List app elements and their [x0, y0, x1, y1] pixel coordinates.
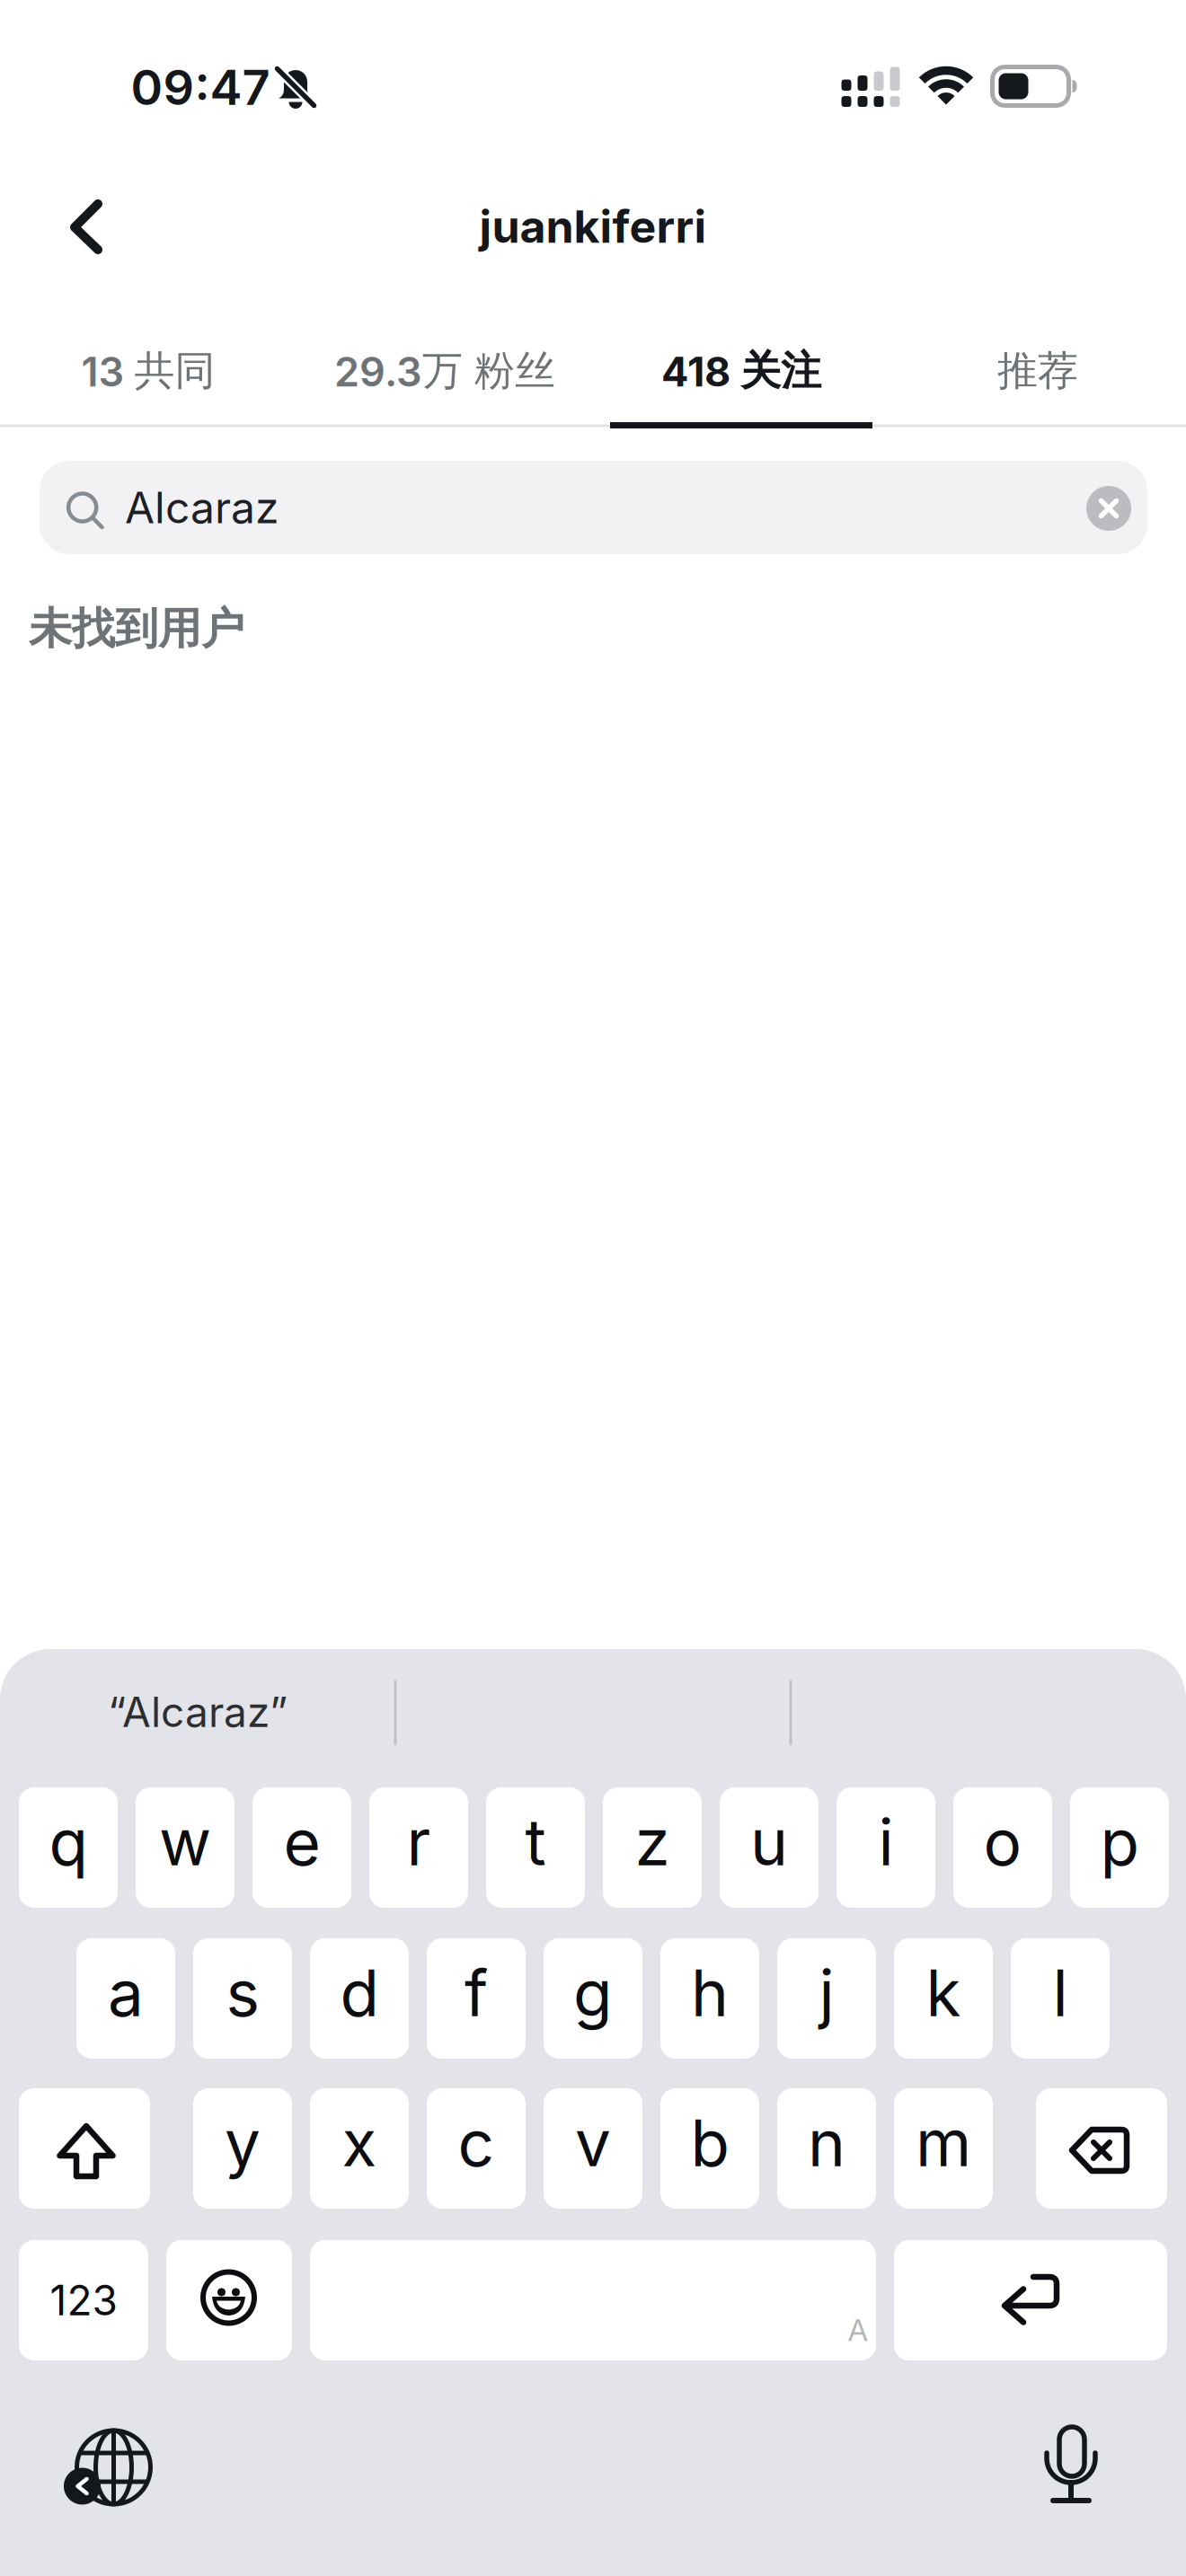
staticText: c: [458, 2104, 495, 2182]
button[interactable]: Clear search text: [1086, 486, 1131, 531]
staticText: A: [848, 2311, 868, 2348]
staticText: a: [108, 1954, 144, 2032]
button[interactable]: Search: [40, 461, 1147, 554]
button[interactable]: u: [720, 1787, 819, 1908]
staticText: y: [225, 2104, 261, 2182]
staticText: 未找到用户: [29, 602, 244, 656]
staticText: b: [690, 2104, 729, 2182]
button[interactable]: i: [836, 1787, 935, 1908]
button[interactable]: h: [660, 1938, 759, 2059]
staticText: e: [283, 1804, 320, 1881]
button[interactable]: v: [544, 2088, 642, 2209]
button[interactable]: Back: [46, 186, 127, 267]
button[interactable]: g: [544, 1938, 642, 2059]
button[interactable]: j: [777, 1938, 876, 2059]
button[interactable]: s: [193, 1938, 292, 2059]
button[interactable]: 418 关注: [593, 326, 889, 416]
button[interactable]: w: [136, 1787, 235, 1908]
button[interactable]: f: [427, 1938, 526, 2059]
button[interactable]: o: [953, 1787, 1052, 1908]
button[interactable]: b: [660, 2088, 759, 2209]
staticText: z: [635, 1804, 670, 1881]
button[interactable]: x: [310, 2088, 409, 2209]
staticText: 418 关注: [661, 346, 821, 396]
button[interactable]: Delete: [1036, 2088, 1167, 2209]
staticText: l: [1053, 1954, 1068, 2032]
button[interactable]: Space: [310, 2240, 876, 2360]
staticText: 123: [50, 2275, 117, 2325]
button[interactable]: 推荐: [889, 326, 1186, 416]
staticText: k: [926, 1954, 961, 2032]
staticText: u: [750, 1804, 788, 1881]
button[interactable]: k: [894, 1938, 993, 2059]
button[interactable]: m: [894, 2088, 993, 2209]
staticText: i: [878, 1804, 894, 1881]
button[interactable]: y: [193, 2088, 292, 2209]
button[interactable]: c: [427, 2088, 526, 2209]
button[interactable]: r: [369, 1787, 468, 1908]
staticText: s: [226, 1954, 259, 2032]
staticText: 09:47: [131, 58, 270, 116]
staticText: m: [916, 2104, 971, 2182]
staticText: p: [1100, 1804, 1139, 1881]
staticText: x: [342, 2104, 377, 2182]
staticText: d: [340, 1954, 379, 2032]
staticText: t: [525, 1804, 546, 1881]
button[interactable]: q: [19, 1787, 118, 1908]
staticText: r: [407, 1804, 431, 1881]
button[interactable]: a: [76, 1938, 175, 2059]
staticText: g: [573, 1954, 613, 2032]
button[interactable]: 13 共同: [0, 326, 296, 416]
button[interactable]: z: [603, 1787, 702, 1908]
staticText: h: [691, 1954, 729, 2032]
button[interactable]: Emoji: [166, 2240, 292, 2360]
button[interactable]: “Alcaraz”: [2, 1649, 394, 1775]
button[interactable]: 123: [19, 2240, 148, 2360]
button[interactable]: Return: [894, 2240, 1167, 2360]
staticText: v: [575, 2104, 611, 2182]
staticText: 13 共同: [81, 346, 215, 396]
staticText: juankiferri: [479, 199, 707, 254]
button[interactable]: Next keyboard: [64, 2420, 163, 2519]
staticText: o: [983, 1804, 1022, 1881]
staticText: “Alcaraz”: [108, 1687, 288, 1737]
button[interactable]: 29.3万 粉丝: [296, 326, 593, 416]
button[interactable]: n: [777, 2088, 876, 2209]
staticText: n: [808, 2104, 845, 2182]
button[interactable]: Shift: [19, 2088, 150, 2209]
staticText: 推荐: [997, 346, 1078, 396]
button[interactable]: d: [310, 1938, 409, 2059]
button[interactable]: p: [1070, 1787, 1169, 1908]
button[interactable]: e: [252, 1787, 351, 1908]
staticText: w: [159, 1804, 211, 1881]
staticText: q: [49, 1804, 88, 1881]
button[interactable]: Dictation: [1031, 2413, 1111, 2512]
staticText: 29.3万 粉丝: [334, 346, 555, 396]
staticText: j: [819, 1954, 834, 2032]
staticText: Alcaraz: [125, 481, 279, 534]
button[interactable]: t: [486, 1787, 585, 1908]
staticText: f: [465, 1954, 488, 2032]
button[interactable]: l: [1011, 1938, 1110, 2059]
